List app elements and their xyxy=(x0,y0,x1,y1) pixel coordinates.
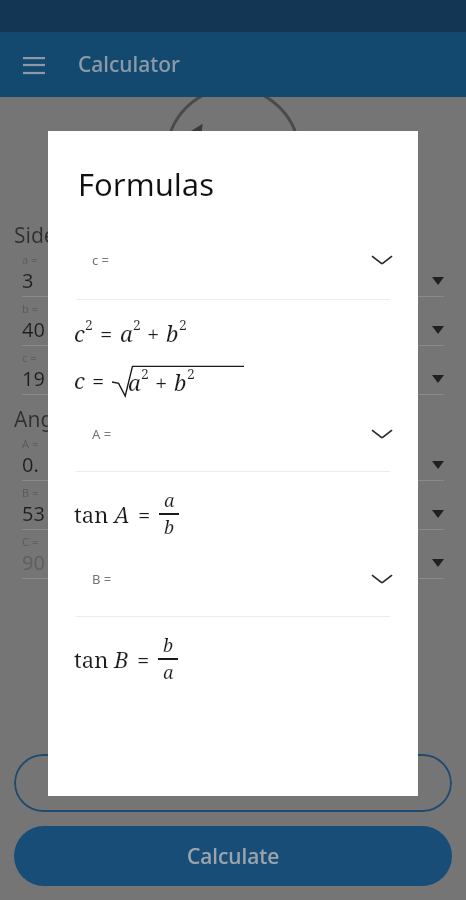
staticText: 0. xyxy=(22,451,432,478)
staticText: 3 xyxy=(22,267,432,294)
other: Expand xyxy=(372,254,392,266)
staticText: b xyxy=(174,367,187,397)
staticText: = xyxy=(138,499,151,529)
staticText: B = xyxy=(92,570,112,588)
staticText: C = xyxy=(22,534,39,549)
button[interactable]: Calculate xyxy=(14,826,452,886)
staticText: 2 xyxy=(133,315,141,334)
staticText: b xyxy=(164,515,175,540)
staticText: 2 xyxy=(85,315,93,334)
staticText: 53 xyxy=(22,500,432,527)
staticText: a xyxy=(120,318,133,348)
button[interactable]: A = xyxy=(48,419,418,449)
staticText: = xyxy=(100,318,113,348)
staticText: + xyxy=(147,318,160,348)
staticText: 40 xyxy=(22,316,432,343)
staticText: = xyxy=(137,644,150,674)
staticText: A xyxy=(114,499,130,529)
staticText: c = xyxy=(92,251,110,269)
staticText: b xyxy=(163,633,174,658)
staticText: 19 xyxy=(22,365,432,392)
staticText: b = xyxy=(22,301,38,316)
staticText: = xyxy=(92,365,105,395)
staticText: tan xyxy=(74,644,109,674)
staticText: a = xyxy=(22,252,38,267)
staticText: b xyxy=(166,318,179,348)
staticText: 2 xyxy=(179,315,187,334)
staticText: tan xyxy=(74,499,109,529)
staticText: Calculator xyxy=(78,50,180,79)
other: Expand xyxy=(372,573,392,585)
button[interactable]: Open navigation menu xyxy=(10,41,58,89)
button[interactable]: c = xyxy=(48,245,418,275)
staticText: 2 xyxy=(187,364,195,383)
staticText: 2 xyxy=(141,364,149,383)
staticText: c = xyxy=(22,350,37,365)
button[interactable]: B = xyxy=(48,564,418,594)
staticText: a xyxy=(164,488,175,513)
staticText: Calculate xyxy=(187,842,280,871)
staticText: a xyxy=(163,660,174,685)
staticText: Angles xyxy=(14,405,81,434)
staticText: Sides xyxy=(14,221,66,250)
staticText: B = xyxy=(22,485,39,500)
staticText: + xyxy=(155,367,168,397)
staticText: c xyxy=(74,318,85,348)
staticText: Formulas xyxy=(78,163,215,205)
staticText: 90 xyxy=(22,549,432,576)
other: Expand xyxy=(372,428,392,440)
staticText: B xyxy=(114,644,129,674)
staticText: c xyxy=(74,365,85,395)
staticText: a xyxy=(128,367,141,397)
staticText: A = xyxy=(22,436,39,451)
staticText: A = xyxy=(92,425,112,443)
button[interactable] xyxy=(14,754,452,812)
